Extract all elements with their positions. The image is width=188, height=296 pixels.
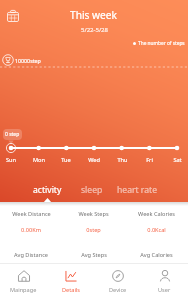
staticText: 0 step (5, 131, 20, 138)
button[interactable]: Calendar (5, 8, 21, 24)
button[interactable]: Device (94, 267, 141, 294)
staticText: Avg Calories (140, 251, 173, 259)
staticText: Week Steps (78, 210, 109, 218)
staticText: Mainpage (10, 286, 37, 294)
button[interactable]: heart rate (117, 184, 158, 196)
staticText: Details (62, 286, 80, 294)
staticText: This week (70, 8, 118, 22)
button[interactable]: Avg Calories (125, 251, 188, 259)
staticText: User (158, 286, 171, 294)
button[interactable]: Week Steps (62, 210, 125, 234)
staticText: Week Calories (138, 210, 175, 218)
staticText: Device (109, 286, 127, 294)
staticText: Week Distance (12, 210, 51, 218)
button[interactable]: Week Calories (125, 210, 188, 234)
staticText: Wed (88, 156, 100, 164)
staticText: Thu (117, 156, 128, 164)
staticText: Mon (33, 156, 45, 164)
staticText: Sun (6, 156, 16, 164)
staticText: 0step (86, 226, 101, 234)
button[interactable]: Week Distance (0, 210, 62, 234)
button[interactable]: Avg Steps (62, 251, 125, 259)
staticText: Avg Steps (81, 251, 107, 259)
button[interactable]: Avg Distance (0, 251, 62, 259)
button[interactable]: sleep (81, 184, 103, 196)
staticText: Avg Distance (14, 251, 48, 259)
staticText: The number of steps (138, 40, 185, 47)
button[interactable]: User (141, 267, 188, 294)
staticText: 0.0Kcal (147, 226, 166, 234)
staticText: Sat (173, 156, 182, 164)
staticText: 5/22-5/28 (81, 26, 108, 34)
staticText: Tue (61, 156, 71, 164)
button[interactable]: activity (33, 184, 62, 196)
button[interactable]: Mainpage (0, 267, 47, 294)
staticText: 0.00Km (21, 226, 41, 234)
staticText: 10000step (15, 57, 41, 64)
button[interactable]: Details (47, 267, 94, 294)
staticText: Fri (146, 156, 153, 164)
